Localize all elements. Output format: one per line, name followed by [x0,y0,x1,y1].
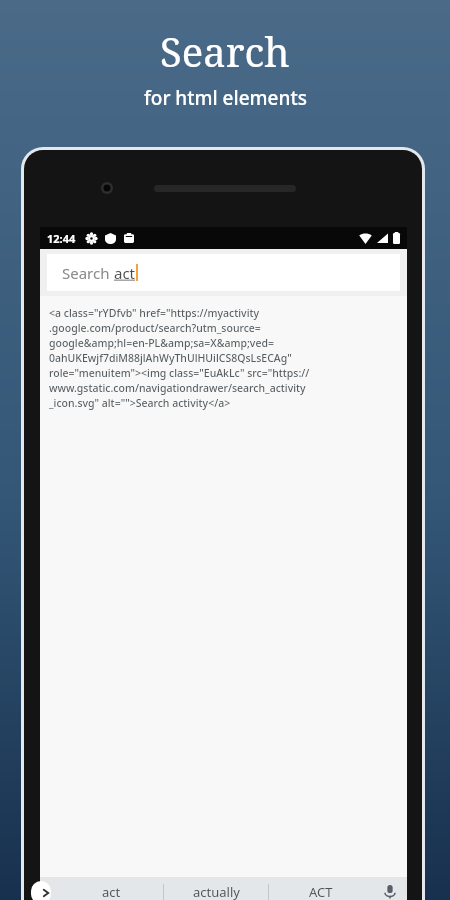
staticText: Search [62,263,114,283]
button[interactable]: Search [47,254,400,291]
button[interactable]: actually [164,877,268,900]
staticText: act [114,263,136,283]
staticText: Search [160,24,290,78]
button[interactable]: Voice input [373,877,407,900]
staticText: act [102,883,121,900]
button[interactable]: act [60,877,163,900]
staticText: 12:44 [47,231,76,246]
staticText: actually [193,883,240,900]
button[interactable]: Expand suggestions [40,877,60,900]
staticText: <a class="rYDfvb" href="https://myactivi… [49,306,310,410]
button[interactable]: ACT [269,877,373,900]
staticText: for html elements [144,85,307,111]
staticText: ACT [309,883,333,900]
